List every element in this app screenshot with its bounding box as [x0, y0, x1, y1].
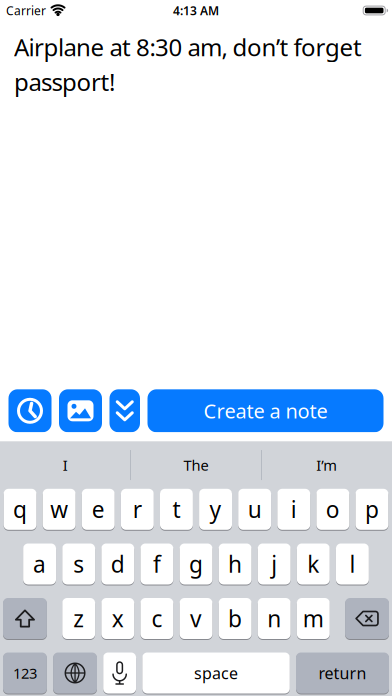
staticText: 4:13 AM	[173, 2, 219, 18]
button[interactable]: e	[82, 489, 115, 530]
button[interactable]: z	[62, 598, 95, 639]
staticText: j	[271, 549, 277, 579]
staticText: o	[326, 494, 340, 524]
staticText: m	[303, 603, 324, 633]
button[interactable]	[53, 652, 97, 693]
button[interactable]: u	[238, 489, 271, 530]
staticText: f	[153, 549, 161, 579]
button[interactable]: o	[316, 489, 349, 530]
staticText: Carrier	[6, 2, 46, 18]
staticText: I’m	[316, 455, 337, 475]
button[interactable]: t	[160, 489, 193, 530]
staticText: Create a note	[203, 397, 327, 424]
button[interactable]	[109, 389, 140, 432]
button[interactable]: v	[180, 598, 212, 639]
staticText: q	[13, 494, 27, 524]
button[interactable]: 123	[3, 652, 47, 693]
button[interactable]: g	[180, 543, 212, 584]
staticText: r	[133, 494, 142, 524]
button[interactable]: q	[4, 489, 36, 530]
staticText: u	[248, 494, 262, 524]
button[interactable]: p	[355, 489, 388, 530]
staticText: return	[318, 662, 366, 684]
staticText: v	[190, 603, 202, 633]
staticText: k	[307, 549, 319, 579]
staticText: n	[267, 603, 281, 633]
button[interactable]: a	[23, 543, 56, 584]
staticText: 123	[13, 663, 37, 683]
staticText: e	[92, 494, 105, 524]
button[interactable]: k	[297, 543, 330, 584]
staticText: space	[194, 662, 238, 684]
staticText: d	[111, 549, 125, 579]
staticText: w	[50, 494, 68, 524]
button[interactable]: Create a note	[147, 389, 383, 432]
button[interactable]	[103, 652, 136, 693]
button[interactable]: h	[219, 543, 252, 584]
button[interactable]	[3, 598, 47, 639]
button[interactable]: j	[258, 543, 291, 584]
staticText: a	[33, 549, 46, 579]
button[interactable]: b	[219, 598, 252, 639]
staticText: y	[210, 494, 222, 524]
button[interactable]: d	[101, 543, 134, 584]
staticText: I	[63, 455, 68, 475]
staticText: x	[112, 603, 124, 633]
staticText: b	[228, 603, 242, 633]
staticText: c	[151, 603, 162, 633]
button[interactable]: The	[131, 455, 261, 475]
button[interactable]: c	[140, 598, 173, 639]
button[interactable]	[8, 389, 51, 432]
staticText: i	[291, 494, 297, 524]
staticText: s	[73, 549, 84, 579]
staticText: l	[349, 549, 355, 579]
button[interactable]: r	[121, 489, 154, 530]
button[interactable]: I	[0, 455, 131, 475]
button[interactable]: space	[142, 652, 290, 693]
button[interactable]: m	[297, 598, 330, 639]
button[interactable]: return	[296, 652, 389, 693]
button[interactable]: l	[336, 543, 369, 584]
staticText: z	[73, 603, 84, 633]
button[interactable]: n	[258, 598, 291, 639]
button[interactable]: x	[101, 598, 134, 639]
button[interactable]: y	[199, 489, 232, 530]
staticText: t	[172, 494, 180, 524]
staticText: g	[189, 549, 203, 579]
button[interactable]: s	[62, 543, 95, 584]
staticText: h	[228, 549, 242, 579]
button[interactable]: I’m	[261, 455, 392, 475]
staticText: Airplane at 8:30 am, don’t forget passpo…	[14, 31, 362, 98]
button[interactable]	[345, 598, 389, 639]
button[interactable]	[59, 389, 102, 432]
button[interactable]: i	[277, 489, 310, 530]
staticText: The	[183, 455, 208, 475]
button[interactable]: w	[43, 489, 76, 530]
button[interactable]: f	[140, 543, 173, 584]
staticText: p	[365, 494, 379, 524]
